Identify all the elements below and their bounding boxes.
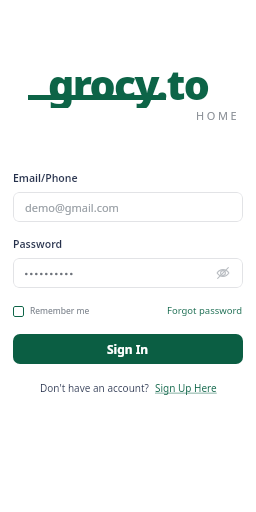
staticText: HOME (196, 108, 240, 123)
button[interactable]: Sign In (13, 334, 243, 364)
staticText: demo@gmail.com (25, 200, 119, 215)
button[interactable]: Remember me (13, 303, 90, 319)
staticText: Forgot password (167, 304, 243, 317)
staticText: Sign In (107, 341, 149, 357)
staticText: Password (13, 237, 63, 251)
button[interactable]: Forgot password (167, 302, 243, 319)
staticText: Don't have an account? (40, 381, 149, 395)
staticText: Remember me (30, 305, 90, 317)
staticText: grocy.to (48, 56, 209, 108)
button[interactable]: Show password (215, 265, 231, 281)
button[interactable]: Sign Up Here (155, 381, 217, 395)
staticText: Sign Up Here (155, 381, 217, 395)
staticText: Email/Phone (13, 171, 78, 185)
button[interactable]: demo@gmail.com (13, 192, 243, 222)
button[interactable]: Show password (13, 258, 243, 288)
